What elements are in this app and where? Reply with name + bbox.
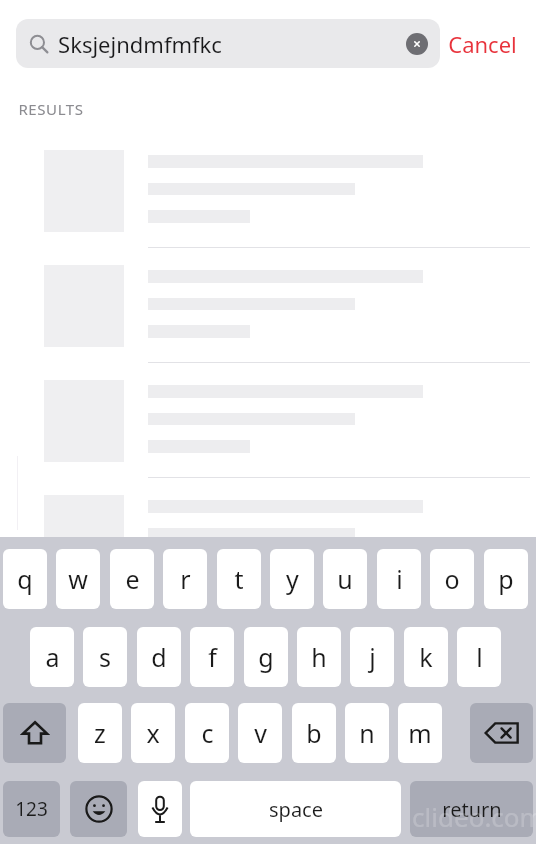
- staticText: a: [45, 640, 60, 674]
- button[interactable]: Sksjejndmfmfkc: [16, 19, 440, 68]
- button[interactable]: [44, 495, 124, 577]
- button[interactable]: u: [323, 549, 367, 609]
- button[interactable]: 123: [3, 781, 60, 837]
- button[interactable]: d: [137, 627, 181, 687]
- staticText: r: [180, 562, 191, 596]
- button[interactable]: Cancel: [448, 19, 517, 68]
- button[interactable]: k: [404, 627, 448, 687]
- button[interactable]: return: [410, 781, 533, 837]
- button[interactable]: l: [457, 627, 501, 687]
- staticText: Sksjejndmfmfkc: [58, 29, 222, 59]
- staticText: f: [208, 640, 217, 674]
- button[interactable]: s: [83, 627, 127, 687]
- staticText: clideo.com: [412, 799, 536, 834]
- button[interactable]: n: [345, 703, 389, 763]
- staticText: t: [234, 562, 244, 596]
- button[interactable]: c: [185, 703, 229, 763]
- staticText: h: [311, 640, 327, 674]
- button[interactable]: t: [217, 549, 261, 609]
- button[interactable]: Dictation: [138, 781, 182, 837]
- staticText: RESULTS: [18, 99, 84, 119]
- button[interactable]: a: [30, 627, 74, 687]
- button[interactable]: f: [190, 627, 234, 687]
- staticText: e: [125, 562, 140, 596]
- staticText: c: [201, 716, 214, 750]
- staticText: l: [476, 640, 483, 674]
- button[interactable]: Backspace: [470, 703, 533, 763]
- button[interactable]: j: [350, 627, 394, 687]
- button[interactable]: e: [110, 549, 154, 609]
- staticText: i: [396, 562, 403, 596]
- staticText: w: [68, 562, 88, 596]
- button[interactable]: space: [190, 781, 401, 837]
- button[interactable]: Shift: [3, 703, 66, 763]
- button[interactable]: w: [56, 549, 100, 609]
- button[interactable]: q: [3, 549, 47, 609]
- staticText: y: [286, 562, 299, 596]
- staticText: d: [151, 640, 167, 674]
- staticText: space: [269, 796, 323, 823]
- staticText: u: [337, 562, 353, 596]
- staticText: return: [442, 796, 502, 823]
- staticText: Cancel: [448, 29, 517, 59]
- button[interactable]: z: [78, 703, 122, 763]
- button[interactable]: h: [297, 627, 341, 687]
- staticText: n: [359, 716, 375, 750]
- button[interactable]: i: [377, 549, 421, 609]
- staticText: q: [17, 562, 33, 596]
- staticText: z: [94, 716, 106, 750]
- staticText: x: [146, 716, 160, 750]
- button[interactable]: p: [484, 549, 528, 609]
- staticText: v: [254, 716, 267, 750]
- staticText: m: [408, 716, 432, 750]
- staticText: o: [444, 562, 460, 596]
- button[interactable]: b: [292, 703, 336, 763]
- staticText: s: [99, 640, 111, 674]
- button[interactable]: y: [270, 549, 314, 609]
- staticText: b: [306, 716, 322, 750]
- button[interactable]: g: [244, 627, 288, 687]
- button[interactable]: r: [163, 549, 207, 609]
- button[interactable]: x: [131, 703, 175, 763]
- staticText: k: [419, 640, 433, 674]
- button[interactable]: v: [238, 703, 282, 763]
- staticText: p: [498, 562, 514, 596]
- button[interactable]: Emoji: [70, 781, 127, 837]
- button[interactable]: m: [398, 703, 442, 763]
- staticText: j: [369, 640, 376, 674]
- button[interactable]: o: [430, 549, 474, 609]
- staticText: 123: [15, 796, 48, 822]
- button[interactable]: Clear text: [406, 33, 428, 55]
- staticText: g: [258, 640, 274, 674]
